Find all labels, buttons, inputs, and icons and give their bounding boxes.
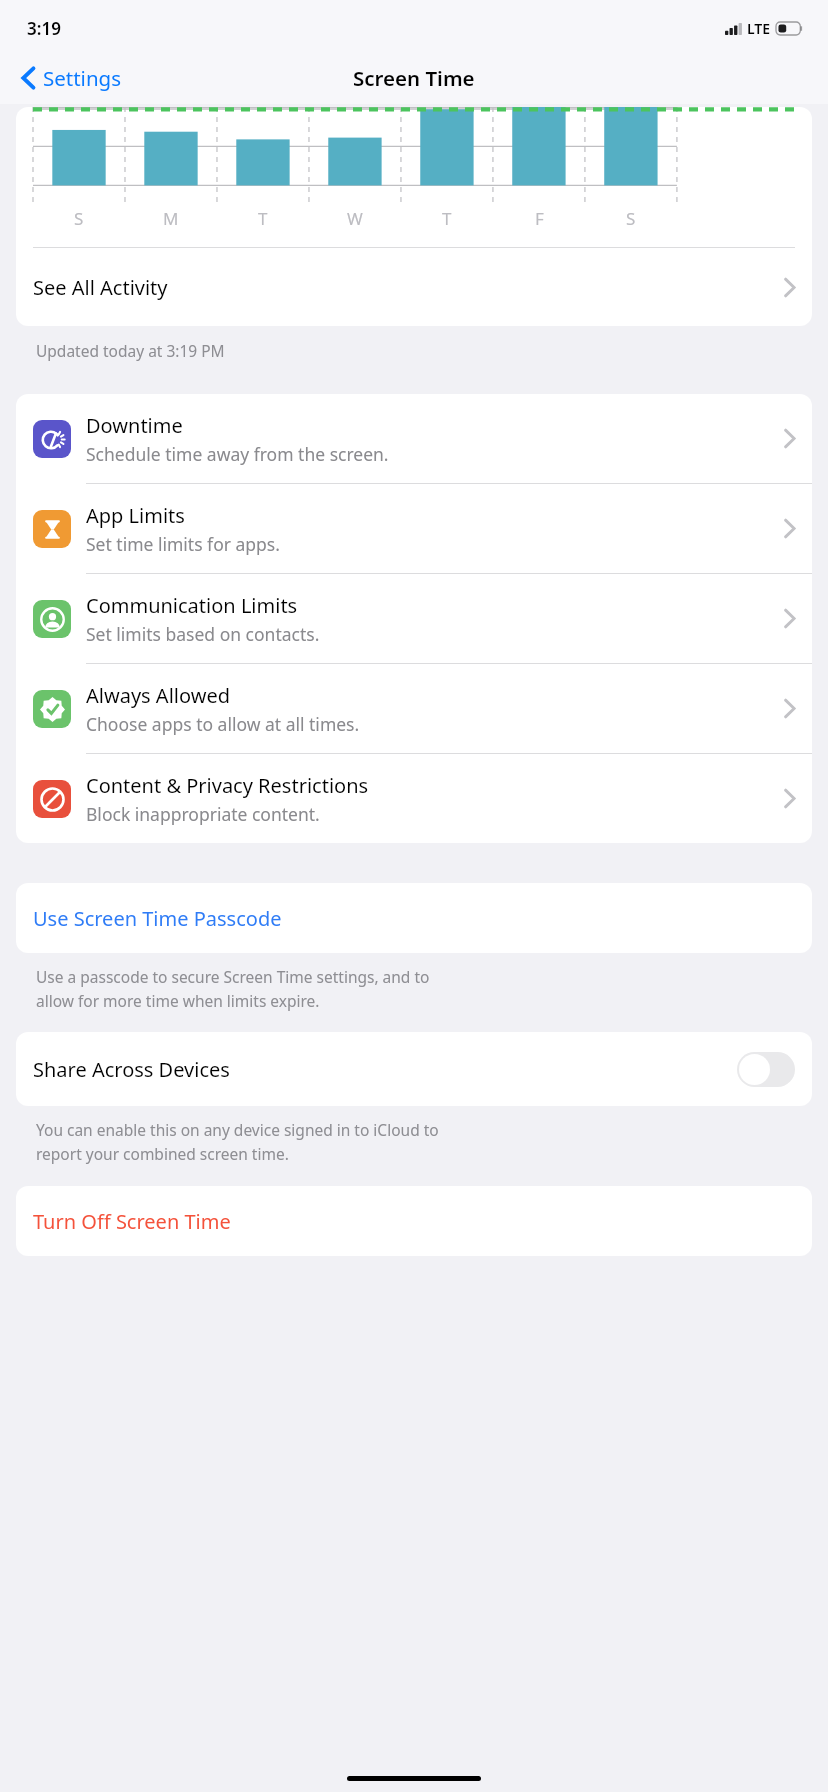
staticText: Block inappropriate content. bbox=[86, 802, 320, 826]
button[interactable]: Use Screen Time Passcode bbox=[16, 883, 812, 953]
staticText: Screen Time bbox=[353, 64, 475, 92]
staticText: You can enable this on any device signed… bbox=[36, 1119, 439, 1164]
staticText: T bbox=[258, 207, 268, 230]
staticText: F bbox=[535, 207, 544, 230]
button[interactable]: Turn Off Screen Time bbox=[16, 1186, 812, 1256]
button[interactable]: Communication Limits bbox=[16, 574, 812, 663]
button[interactable]: Downtime bbox=[16, 394, 812, 483]
staticText: Always Allowed bbox=[86, 682, 230, 709]
staticText: Set limits based on contacts. bbox=[86, 622, 320, 646]
staticText: Use a passcode to secure Screen Time set… bbox=[36, 966, 430, 1011]
staticText: W bbox=[347, 207, 363, 230]
staticText: Downtime bbox=[86, 412, 183, 439]
button[interactable]: Always Allowed bbox=[16, 664, 812, 753]
button[interactable]: Content & Privacy Restrictions bbox=[16, 754, 812, 843]
staticText: M bbox=[163, 207, 179, 230]
staticText: 3:19 bbox=[27, 17, 61, 40]
staticText: S bbox=[626, 207, 636, 230]
staticText: Choose apps to allow at all times. bbox=[86, 712, 360, 736]
staticText: Share Across Devices bbox=[33, 1056, 737, 1083]
staticText: See All Activity bbox=[33, 274, 784, 301]
button[interactable]: See All Activity bbox=[16, 248, 812, 326]
button[interactable]: Share Across Devices bbox=[16, 1032, 812, 1106]
staticText: Turn Off Screen Time bbox=[33, 1208, 231, 1235]
staticText: Set time limits for apps. bbox=[86, 532, 280, 556]
staticText: Content & Privacy Restrictions bbox=[86, 772, 369, 799]
staticText: S bbox=[74, 207, 84, 230]
staticText: Schedule time away from the screen. bbox=[86, 442, 389, 466]
staticText: Settings bbox=[43, 64, 122, 92]
staticText: Use Screen Time Passcode bbox=[33, 905, 282, 932]
staticText: Updated today at 3:19 PM bbox=[36, 340, 225, 361]
staticText: App Limits bbox=[86, 502, 185, 529]
button[interactable]: App Limits bbox=[16, 484, 812, 573]
button[interactable]: Settings bbox=[16, 58, 128, 98]
staticText: LTE bbox=[747, 19, 771, 38]
staticText: Communication Limits bbox=[86, 592, 298, 619]
staticText: T bbox=[442, 207, 452, 230]
